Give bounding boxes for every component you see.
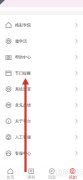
button[interactable]: 意见反馈	[0, 97, 83, 113]
button[interactable]: 首页	[0, 167, 21, 179]
staticText: 说明图示	[55, 168, 83, 178]
button[interactable]: 消息	[41, 167, 62, 179]
button[interactable]: 系统设置	[0, 81, 83, 97]
button[interactable]: 课程	[21, 167, 42, 179]
staticText: 课程	[27, 175, 35, 179]
button[interactable]: 节日提醒	[0, 65, 83, 81]
button[interactable]: 人工客服	[0, 129, 83, 145]
staticText: 精彩学院	[15, 23, 31, 28]
staticText: 消息	[48, 175, 56, 179]
button[interactable]: 客服中心	[0, 145, 83, 161]
button[interactable]: 精彩学院	[0, 17, 83, 33]
staticText: 帮助中心	[15, 55, 31, 60]
staticText: 人工客服	[15, 135, 31, 140]
button[interactable]: 我的	[62, 167, 83, 179]
staticText: 关于平台	[15, 119, 31, 124]
staticText: 我的	[69, 175, 77, 179]
staticText: 节日提醒	[15, 71, 31, 76]
staticText: 邀学活	[15, 39, 27, 44]
staticText: 意见反馈	[15, 103, 31, 108]
staticText: 客服中心	[15, 151, 31, 156]
staticText: 首页	[6, 175, 14, 179]
button[interactable]: 邀学活	[0, 33, 83, 49]
button[interactable]: 关于平台	[0, 113, 83, 129]
staticText: 系统设置	[15, 87, 31, 92]
button[interactable]: 帮助中心	[0, 49, 83, 65]
